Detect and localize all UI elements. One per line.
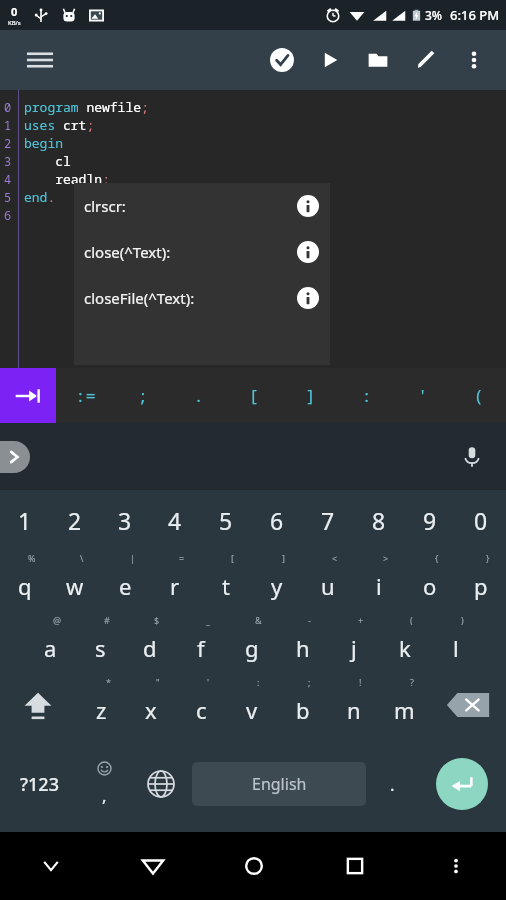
staticText: 2 xyxy=(68,505,82,536)
button[interactable]: Comma and emoji xyxy=(78,736,130,832)
staticText: @ xyxy=(53,614,62,626)
button[interactable]: { xyxy=(404,550,455,612)
button[interactable]: Tab xyxy=(0,368,56,423)
button[interactable]: Home xyxy=(203,832,304,900)
button[interactable]: 6 xyxy=(251,490,302,550)
staticText: closeFile(^Text): xyxy=(84,288,195,308)
button[interactable]: More xyxy=(405,832,506,900)
staticText: readln; xyxy=(24,170,110,188)
button[interactable]: . xyxy=(366,736,418,832)
staticText: : xyxy=(361,384,372,407)
button[interactable]: clrscr: xyxy=(74,183,330,229)
staticText: program newfile; xyxy=(24,98,149,116)
staticText: < xyxy=(332,552,338,564)
button[interactable]: 0 xyxy=(455,490,506,550)
button[interactable]: 4 xyxy=(150,490,200,550)
button[interactable]: @ xyxy=(25,612,75,674)
button[interactable]: English xyxy=(192,762,366,806)
button[interactable]: := xyxy=(61,368,109,423)
button[interactable]: [ xyxy=(229,368,277,423)
staticText: . xyxy=(193,384,204,407)
button[interactable]: [ xyxy=(200,550,251,612)
staticText: 5 xyxy=(4,189,12,205)
button[interactable]: ) xyxy=(430,612,481,674)
button[interactable]: ' xyxy=(398,368,446,423)
button[interactable]: Expand suggestions xyxy=(0,441,30,473)
button[interactable]: $ xyxy=(125,612,175,674)
staticText: * xyxy=(106,676,111,688)
button[interactable]: Info about close(^Text): xyxy=(296,240,320,264)
button[interactable]: Info about clrscr: xyxy=(296,194,320,218)
button[interactable]: ] xyxy=(251,550,302,612)
button[interactable]: 3 xyxy=(100,490,150,550)
staticText: 4 xyxy=(168,505,182,536)
button[interactable]: : xyxy=(226,674,277,736)
button[interactable]: 2 xyxy=(50,490,100,550)
button[interactable]: ] xyxy=(286,368,334,423)
button[interactable]: # xyxy=(75,612,125,674)
button[interactable]: } xyxy=(455,550,506,612)
staticText: - xyxy=(308,614,311,626)
button[interactable]: ( xyxy=(379,612,430,674)
button[interactable]: Hide keyboard xyxy=(0,832,102,900)
button[interactable]: _ xyxy=(175,612,226,674)
button[interactable]: " xyxy=(126,674,176,736)
button[interactable]: % xyxy=(0,550,50,612)
button[interactable]: + xyxy=(328,612,379,674)
staticText: ?123 xyxy=(20,772,59,797)
staticText: + xyxy=(358,614,364,626)
button[interactable]: * xyxy=(76,674,126,736)
button[interactable]: Enter xyxy=(436,758,488,810)
button[interactable]: ? xyxy=(379,674,430,736)
button[interactable]: | xyxy=(100,550,150,612)
staticText: 8 xyxy=(372,505,386,536)
button[interactable]: Open file xyxy=(354,32,402,88)
button[interactable]: Shift xyxy=(0,674,76,736)
button[interactable]: ! xyxy=(328,674,379,736)
staticText: x xyxy=(145,695,157,725)
staticText: ] xyxy=(282,552,285,564)
button[interactable]: = xyxy=(150,550,200,612)
staticText: o xyxy=(423,571,437,601)
staticText: { xyxy=(435,552,439,564)
button[interactable]: Backspace xyxy=(430,674,506,736)
button[interactable]: Menu xyxy=(18,38,62,82)
button[interactable]: ( xyxy=(454,368,502,423)
button[interactable]: & xyxy=(226,612,277,674)
staticText: ) xyxy=(461,614,464,626)
button[interactable]: Run xyxy=(306,32,354,88)
button[interactable]: - xyxy=(277,612,328,674)
button[interactable]: ?123 xyxy=(0,736,78,832)
button[interactable]: \ xyxy=(50,550,100,612)
button[interactable]: ' xyxy=(176,674,226,736)
button[interactable]: More options xyxy=(450,32,498,88)
staticText: l xyxy=(453,633,459,663)
staticText: : xyxy=(257,676,260,688)
button[interactable]: 7 xyxy=(302,490,353,550)
staticText: c xyxy=(196,695,207,725)
button[interactable]: Recents xyxy=(304,832,405,900)
button[interactable]: > xyxy=(353,550,404,612)
button[interactable]: ; xyxy=(277,674,328,736)
button[interactable]: Back xyxy=(102,832,203,900)
staticText: ; xyxy=(308,676,311,688)
button[interactable]: Voice input xyxy=(452,437,492,477)
button[interactable]: ; xyxy=(118,368,166,423)
button[interactable]: Info about closeFile(^Text): xyxy=(296,286,320,310)
button[interactable]: Edit xyxy=(402,32,450,88)
button[interactable]: : xyxy=(342,368,390,423)
staticText: 0 xyxy=(4,99,12,115)
staticText: f xyxy=(197,633,205,663)
button[interactable]: 8 xyxy=(353,490,404,550)
button[interactable]: . xyxy=(174,368,222,423)
button[interactable]: Change language xyxy=(130,736,192,832)
staticText: cl xyxy=(24,152,71,170)
button[interactable]: closeFile(^Text): xyxy=(74,275,330,321)
button[interactable]: 5 xyxy=(200,490,251,550)
button[interactable]: < xyxy=(302,550,353,612)
button[interactable]: 1 xyxy=(0,490,50,550)
button[interactable]: close(^Text): xyxy=(74,229,330,275)
button[interactable]: 9 xyxy=(404,490,455,550)
staticText: ] xyxy=(305,384,316,407)
button[interactable]: Compile xyxy=(258,32,306,88)
